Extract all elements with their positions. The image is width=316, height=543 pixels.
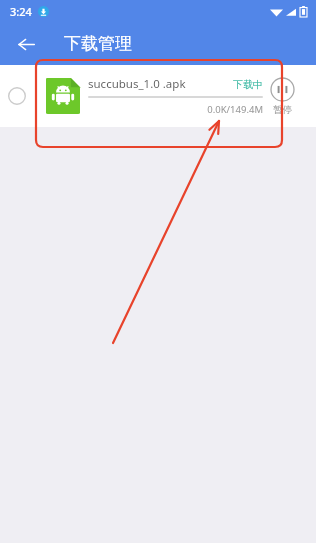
button[interactable]: Back [10, 28, 42, 60]
staticText: succubus_1.0 .apk [88, 76, 186, 92]
staticText: 下载管理 [64, 33, 132, 54]
staticText: 下载中 [233, 78, 263, 91]
button[interactable]: Pause [270, 77, 295, 116]
staticText: 暂停 [273, 104, 292, 116]
staticText: 0.0K/149.4M [88, 103, 263, 116]
button[interactable]: succubus_1.0 .apk [0, 65, 316, 127]
staticText: 3:24 [10, 4, 32, 19]
